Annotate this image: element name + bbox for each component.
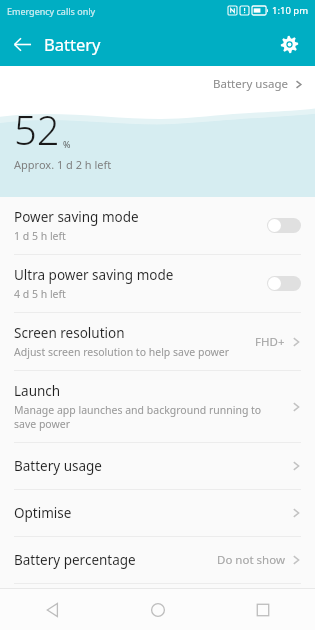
staticText: FHD+ [255,334,285,350]
staticText: Manage app launches and background runni… [14,403,285,431]
button[interactable]: Battery usage [0,443,315,489]
staticText: Ultra power saving mode [14,266,174,284]
staticText: Screen resolution [14,324,125,342]
button[interactable]: Ultra power saving mode [0,255,315,312]
staticText: Battery usage [14,457,102,475]
button[interactable]: Optimise [0,490,315,536]
staticText: 52 [14,102,60,156]
staticText: Launch [14,382,61,400]
button[interactable]: Battery percentage [0,537,315,583]
button[interactable]: Screen resolution [0,313,315,370]
button[interactable]: Back [0,22,44,66]
button[interactable]: Launch [0,371,315,442]
staticText: 1:10 pm [272,4,309,17]
staticText: Battery usage [213,76,288,92]
button[interactable]: Home [105,589,210,630]
staticText: Power saving mode [14,208,139,226]
button[interactable]: Back [0,589,105,630]
button[interactable]: Power saving mode [267,218,301,233]
button[interactable]: Settings [269,24,309,64]
staticText: Do not show [217,552,285,568]
staticText: Approx. 1 d 2 h left [14,157,112,172]
staticText: Adjust screen resolution to help save po… [14,345,230,359]
staticText: 1 d 5 h left [14,229,66,243]
staticText: Optimise [14,504,72,522]
button[interactable]: Ultra power saving mode [267,276,301,291]
staticText: Battery [44,33,101,55]
button[interactable]: Battery usage [207,72,309,96]
button[interactable]: Power saving mode [0,197,315,254]
staticText: Battery percentage [14,551,136,569]
staticText: Emergency calls only [7,5,96,17]
button[interactable]: Recents [210,589,315,630]
staticText: 4 d 5 h left [14,287,66,301]
staticText: % [63,138,71,150]
